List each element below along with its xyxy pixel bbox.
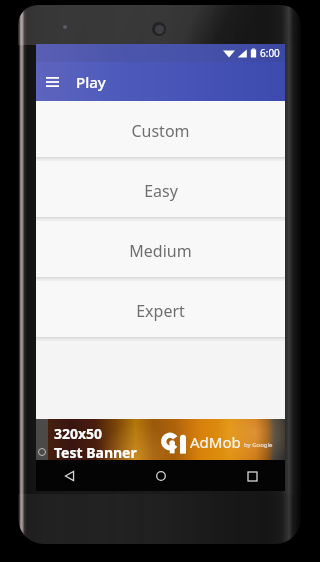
staticText: by Google [244, 441, 273, 449]
staticText: Play [76, 72, 106, 92]
button[interactable]: Advertisement [36, 419, 285, 460]
button[interactable]: Easy [36, 161, 285, 217]
button[interactable]: Recent apps [237, 461, 267, 491]
button[interactable]: Expert [36, 281, 285, 337]
staticText: 320x50 [54, 424, 103, 443]
button[interactable]: Open navigation drawer [40, 70, 64, 94]
button[interactable]: Custom [36, 101, 285, 157]
staticText: Test Banner [54, 443, 137, 460]
staticText: Expert [136, 300, 185, 322]
staticText: Medium [129, 240, 192, 262]
staticText: Easy [144, 180, 178, 202]
staticText: 6:00 [260, 46, 280, 60]
staticText: AdMob [190, 432, 241, 452]
button[interactable]: Back [54, 461, 84, 491]
staticText: Custom [131, 120, 190, 142]
button[interactable]: Medium [36, 221, 285, 277]
button[interactable]: Home [146, 461, 176, 491]
